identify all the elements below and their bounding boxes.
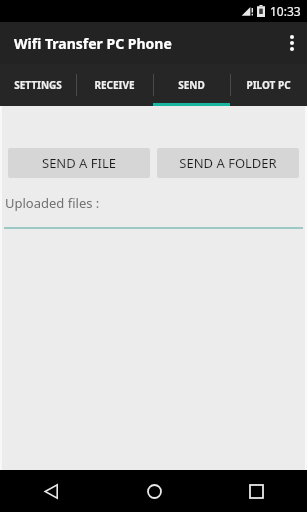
button[interactable]: Back [0, 470, 103, 512]
button[interactable]: RECEIVE [76, 64, 153, 106]
staticText: SETTINGS [14, 78, 62, 92]
staticText: SEND A FOLDER [179, 154, 277, 172]
button[interactable]: Home [103, 470, 205, 512]
button[interactable]: Recent apps [205, 470, 307, 512]
staticText: PILOT PC [246, 78, 291, 92]
button[interactable]: SEND A FILE [8, 148, 150, 178]
staticText: Wifi Transfer PC Phone [14, 34, 172, 53]
button[interactable]: More options [277, 22, 307, 64]
staticText: SEND [178, 78, 205, 92]
button[interactable]: PILOT PC [230, 64, 307, 106]
staticText: 10:33 [270, 3, 301, 19]
button[interactable]: SEND A FOLDER [157, 148, 299, 178]
staticText: Uploaded files : [5, 194, 100, 212]
button[interactable]: SEND [153, 64, 230, 106]
staticText: SEND A FILE [42, 154, 116, 172]
staticText: RECEIVE [94, 78, 135, 92]
button[interactable]: SETTINGS [0, 64, 76, 106]
